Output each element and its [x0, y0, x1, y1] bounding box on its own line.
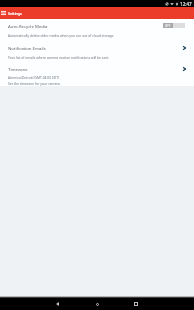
staticText: Automatically delete older media when yo… — [8, 33, 115, 37]
button[interactable]: Notification Emails — [0, 41, 194, 63]
staticText: OFF — [165, 24, 171, 28]
button[interactable]: Home — [87, 298, 107, 310]
button[interactable]: Open navigation menu — [0, 7, 7, 19]
staticText: 12:47 — [180, 1, 192, 7]
staticText: Set the timezone for your camera. — [8, 81, 61, 85]
button[interactable]: Auto-Recycle Media off — [163, 23, 185, 28]
staticText: Notification Emails — [8, 45, 46, 51]
staticText: Your list of emails where camera motion … — [8, 55, 110, 59]
staticText: Auto-Recycle Media — [8, 23, 48, 29]
staticText: Timezone — [8, 66, 28, 72]
staticText: Settings — [8, 11, 22, 16]
button[interactable]: Open Notification Emails — [180, 44, 188, 52]
button[interactable]: Auto-Recycle Media — [0, 19, 194, 41]
button[interactable]: Back — [47, 298, 67, 310]
button[interactable]: Open Timezone — [180, 65, 188, 73]
button[interactable]: Recent apps — [126, 298, 146, 310]
staticText: America/Detroit (GMT-04:00 EDT) — [8, 75, 59, 79]
button[interactable]: Timezone — [0, 62, 194, 79]
